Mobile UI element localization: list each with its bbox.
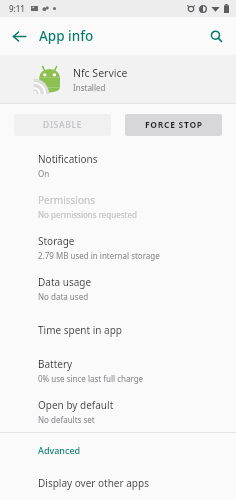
staticText: DISABLE [43,119,83,131]
staticText: No permissions requested [38,209,137,220]
button[interactable]: Nfc Service [0,55,236,103]
staticText: No data used [38,291,89,302]
button[interactable]: FORCE STOP [125,114,222,136]
button[interactable]: Search [201,21,231,51]
staticText: Advanced [38,444,81,456]
button[interactable]: Time spent in app [0,309,236,350]
staticText: Battery [38,357,73,371]
button[interactable]: Notifications [0,145,236,186]
staticText: Data usage [38,275,92,289]
staticText: No defaults set [38,414,95,425]
button[interactable]: Display over other apps [0,466,236,500]
button[interactable]: Open by default [0,391,236,432]
staticText: Display over other apps [38,476,149,490]
button[interactable]: Back [4,21,34,51]
staticText: On [38,168,50,179]
staticText: Time spent in app [38,323,122,337]
button[interactable]: Data usage [0,268,236,309]
staticText: Permissions [38,193,95,207]
button[interactable]: Storage [0,227,236,268]
button[interactable]: Advanced [0,433,236,466]
staticText: 9:11 [9,3,25,14]
staticText: FORCE STOP [145,119,203,131]
staticText: 0% use since last full charge [38,373,144,384]
staticText: Nfc Service [73,66,128,80]
staticText: 2.79 MB used in internal storage [38,250,160,261]
staticText: Open by default [38,398,114,412]
staticText: Installed [73,82,106,93]
button[interactable]: Battery [0,350,236,391]
staticText: Notifications [38,152,98,166]
button[interactable]: DISABLE [14,114,111,136]
staticText: Storage [38,234,75,248]
button[interactable]: Permissions [0,186,236,227]
staticText: App info [39,27,94,45]
